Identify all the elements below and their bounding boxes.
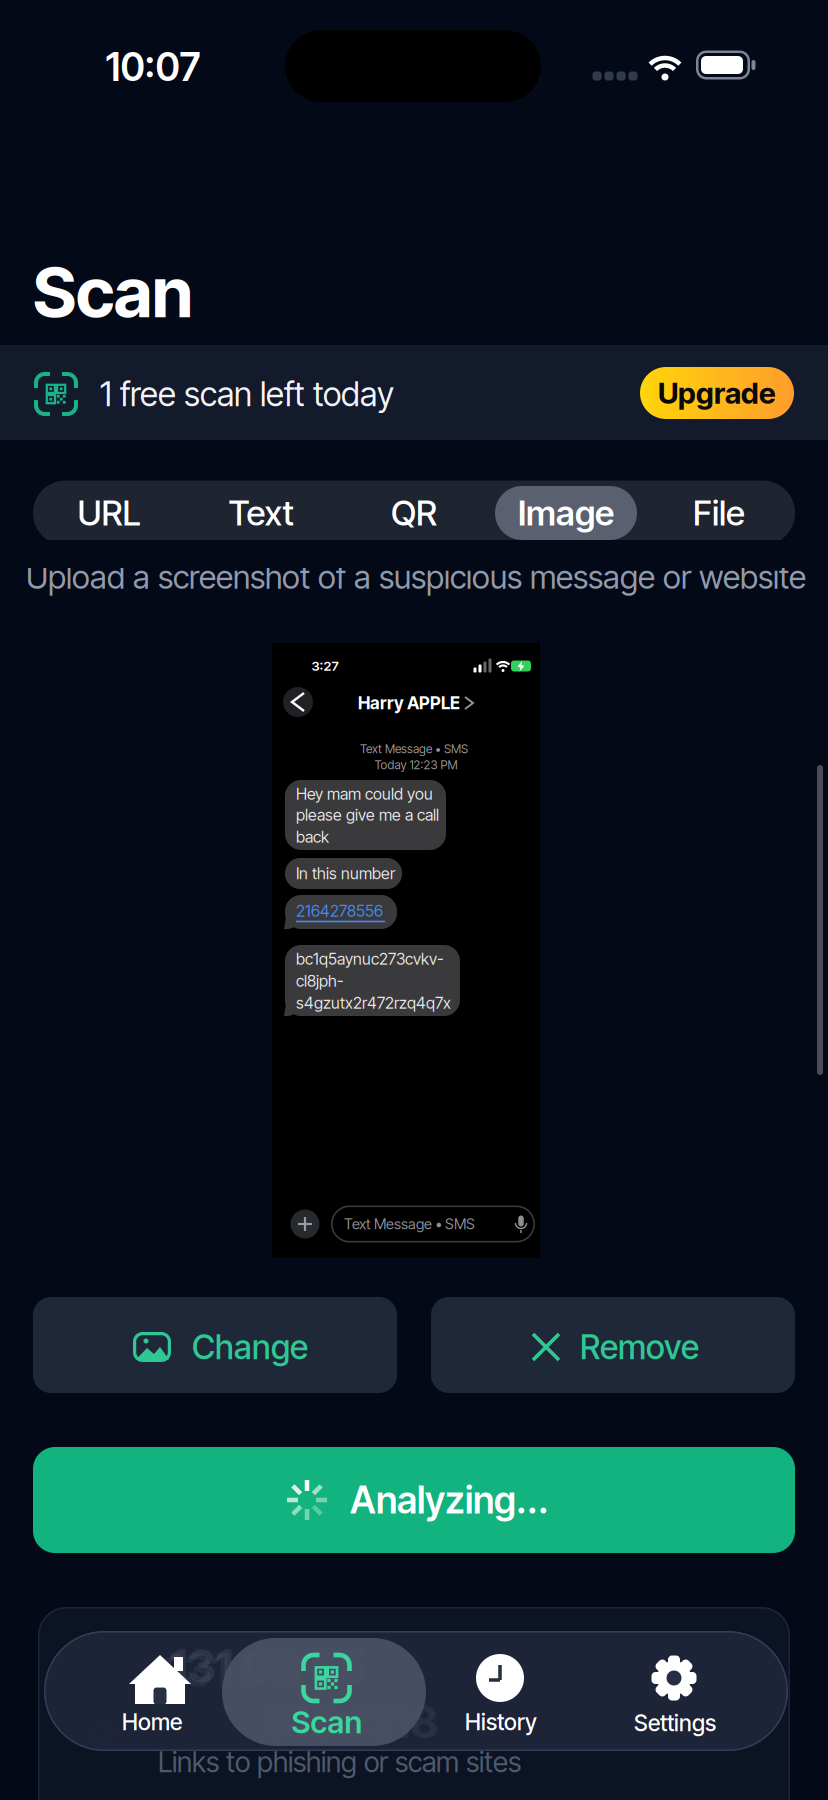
staticText: Scan <box>33 251 193 333</box>
staticText: Harry APPLE <box>358 693 460 713</box>
staticText: 2164278556 <box>296 902 383 920</box>
staticText: Hey mam could you <box>296 785 433 803</box>
staticText: Image <box>518 493 614 533</box>
staticText: Home <box>122 1709 182 1735</box>
staticText: File <box>693 493 745 533</box>
staticText: Settings <box>634 1710 716 1736</box>
staticText: 3:27 <box>311 658 338 674</box>
staticText: Text <box>228 493 293 533</box>
staticText: 515 1318 <box>265 1696 438 1748</box>
staticText: cl8jph- <box>296 972 344 990</box>
staticText: back <box>296 828 329 846</box>
staticText: Scan <box>291 1704 362 1740</box>
staticText: 131 08 55 <box>165 1643 362 1697</box>
staticText: In this number <box>296 864 395 883</box>
staticText: 10:07 <box>105 44 200 90</box>
staticText: Remove <box>580 1327 699 1367</box>
staticText: Upload a screenshot of a suspicious mess… <box>26 558 806 596</box>
staticText: s4gzutx2r472rzq4q7x <box>296 994 451 1012</box>
staticText: URL <box>77 493 140 533</box>
staticText: History <box>465 1709 537 1735</box>
staticText: QR <box>391 493 437 533</box>
staticText: Upgrade <box>658 376 776 410</box>
staticText: Text Message • SMS <box>360 742 468 756</box>
staticText: Today 12:23 PM <box>374 758 457 772</box>
staticText: Links to phishing or scam sites <box>158 1745 521 1778</box>
staticText: Analyzing... <box>350 1478 549 1522</box>
staticText: Change <box>192 1327 308 1367</box>
staticText: bc1q5aynuc273cvkv- <box>296 950 444 968</box>
staticText: Text Message • SMS <box>344 1215 475 1233</box>
staticText: 131 08 55 <box>169 1639 366 1693</box>
staticText: please give me a call <box>296 806 439 824</box>
staticText: 1 free scan left today <box>100 374 394 414</box>
